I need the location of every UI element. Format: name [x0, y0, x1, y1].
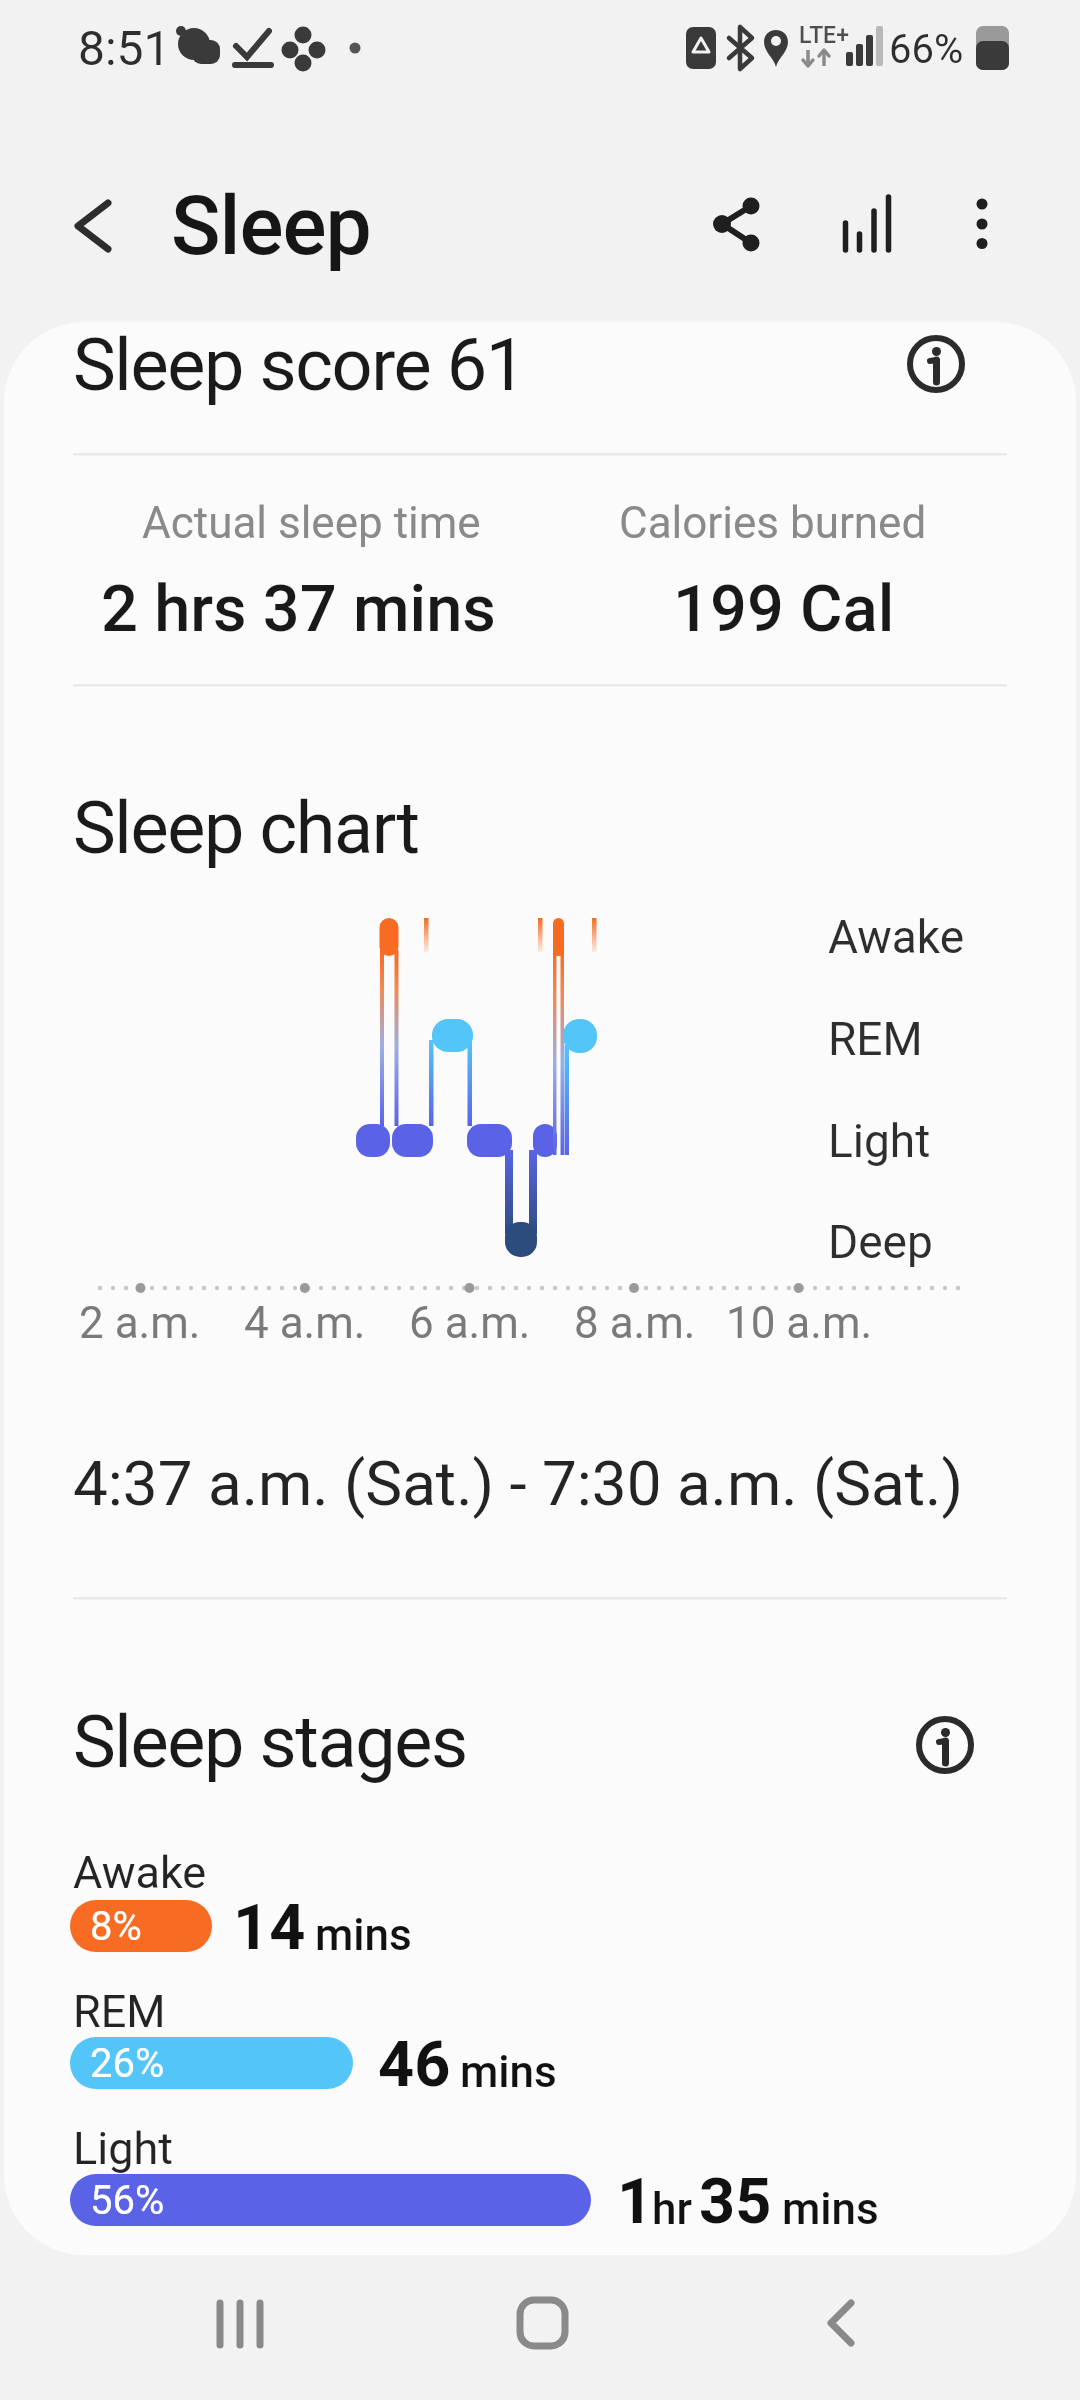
staticText: 6 a.m.: [409, 1297, 531, 1349]
staticText: 26%: [90, 2040, 165, 2087]
button[interactable]: 8%: [70, 1900, 212, 1952]
staticText: mins: [782, 2183, 879, 2235]
button[interactable]: [800, 2278, 890, 2373]
button[interactable]: [820, 185, 915, 270]
staticText: REM: [828, 1012, 923, 1066]
button[interactable]: 56%: [70, 2174, 591, 2226]
staticText: Calories burned: [619, 497, 927, 549]
staticText: 8 a.m.: [574, 1297, 696, 1349]
staticText: 2 hrs 37 mins: [101, 571, 496, 647]
button[interactable]: [45, 180, 145, 275]
staticText: mins: [460, 2046, 557, 2098]
staticText: Sleep chart: [73, 786, 419, 870]
staticText: Sleep score 61: [73, 323, 525, 407]
staticText: 56%: [90, 2177, 165, 2224]
button[interactable]: [906, 334, 966, 394]
staticText: Awake: [828, 910, 965, 964]
staticText: REM: [73, 1985, 166, 2038]
staticText: hr: [652, 2183, 692, 2235]
button[interactable]: [915, 1715, 975, 1775]
staticText: Deep: [828, 1215, 933, 1269]
staticText: mins: [315, 1909, 412, 1961]
staticText: LTE+: [799, 22, 849, 49]
staticText: 199 Cal: [673, 571, 895, 647]
staticText: 4:37 a.m. (Sat.) - 7:30 a.m. (Sat.): [73, 1447, 964, 1520]
staticText: Sleep stages: [73, 1700, 467, 1784]
button[interactable]: 26%: [70, 2037, 353, 2089]
button[interactable]: [495, 2278, 590, 2373]
button[interactable]: [950, 185, 1015, 270]
staticText: Awake: [73, 1846, 207, 1899]
staticText: 8%: [90, 1903, 142, 1950]
staticText: 10 a.m.: [726, 1297, 873, 1349]
staticText: 46: [378, 2028, 451, 2102]
staticText: Light: [73, 2122, 173, 2175]
staticText: 14: [233, 1891, 306, 1965]
staticText: 8:51: [78, 20, 171, 76]
staticText: 66%: [889, 26, 964, 73]
staticText: Sleep: [171, 178, 371, 274]
staticText: Actual sleep time: [142, 497, 481, 549]
staticText: 35: [699, 2165, 772, 2239]
staticText: 2 a.m.: [79, 1297, 201, 1349]
staticText: 1: [617, 2165, 654, 2239]
button[interactable]: [185, 2278, 295, 2373]
staticText: Light: [828, 1114, 931, 1168]
staticText: 4 a.m.: [244, 1297, 366, 1349]
button[interactable]: [690, 185, 790, 270]
